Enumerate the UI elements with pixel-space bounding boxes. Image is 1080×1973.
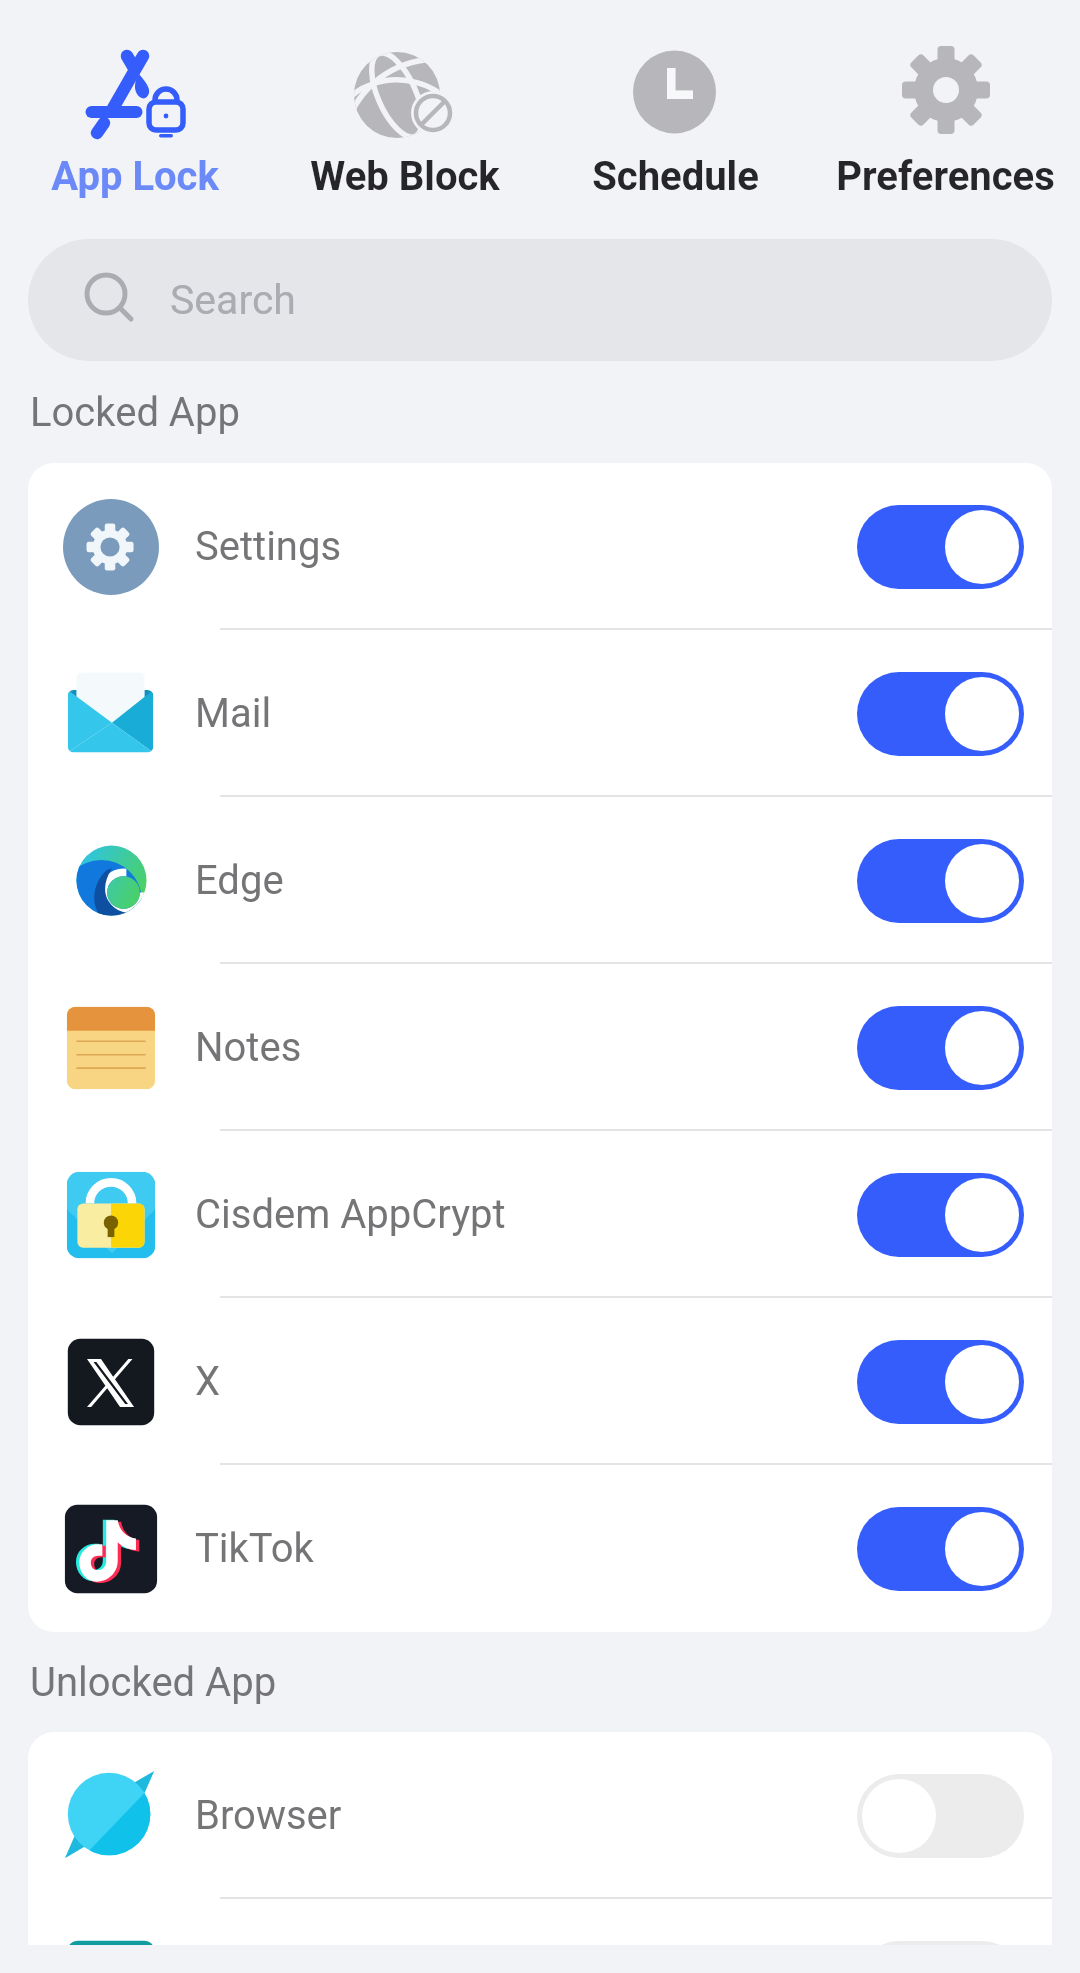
- button[interactable]: Browser: [28, 1732, 1052, 1899]
- button[interactable]: TikTok: [28, 1465, 1052, 1632]
- staticText: Cisdem AppCrypt: [195, 1191, 506, 1238]
- staticText: Unlocked App: [30, 1659, 277, 1706]
- button[interactable]: App Lock: [0, 0, 270, 200]
- button[interactable]: Schedule: [540, 0, 810, 200]
- button[interactable]: Notes: [28, 964, 1052, 1131]
- staticText: X: [195, 1358, 221, 1405]
- staticText: Mail: [195, 690, 272, 737]
- staticText: Settings: [195, 523, 342, 570]
- button[interactable]: Switch off: [857, 1941, 1024, 1945]
- button[interactable]: Settings: [28, 463, 1052, 630]
- button[interactable]: Cisdem AppCrypt: [28, 1131, 1052, 1298]
- button[interactable]: Preferences: [810, 0, 1080, 200]
- button[interactable]: X: [28, 1298, 1052, 1465]
- button[interactable]: Search: [28, 239, 1052, 361]
- button[interactable]: Switch on: [857, 1507, 1024, 1591]
- staticText: Notes: [195, 1024, 302, 1071]
- button[interactable]: Switch on: [857, 505, 1024, 589]
- staticText: Browser: [195, 1792, 342, 1839]
- staticText: Web Block: [310, 153, 500, 200]
- button[interactable]: Edge: [28, 797, 1052, 964]
- staticText: Schedule: [592, 153, 759, 200]
- staticText: TikTok: [195, 1525, 314, 1572]
- button[interactable]: Teams: [28, 1899, 1052, 1945]
- staticText: Edge: [195, 857, 284, 904]
- staticText: App Lock: [51, 153, 219, 200]
- button[interactable]: Switch on: [857, 672, 1024, 756]
- staticText: Search: [170, 276, 296, 324]
- staticText: Locked App: [30, 389, 240, 436]
- button[interactable]: Switch on: [857, 1340, 1024, 1424]
- button[interactable]: Web Block: [270, 0, 540, 200]
- button[interactable]: Mail: [28, 630, 1052, 797]
- button[interactable]: Switch on: [857, 1006, 1024, 1090]
- button[interactable]: Switch on: [857, 1173, 1024, 1257]
- button[interactable]: Switch off: [857, 1774, 1024, 1858]
- button[interactable]: Switch on: [857, 839, 1024, 923]
- staticText: Preferences: [836, 153, 1055, 200]
